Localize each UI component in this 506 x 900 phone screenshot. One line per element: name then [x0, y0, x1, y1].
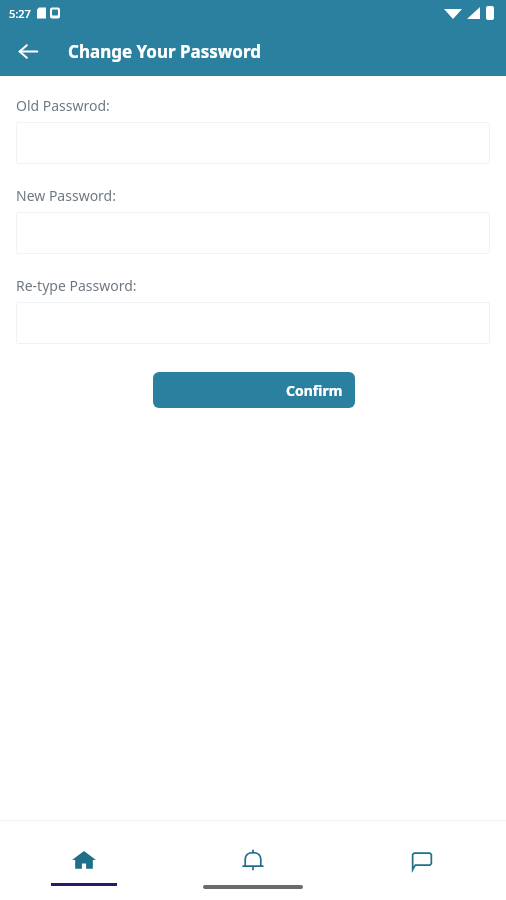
button[interactable] [16, 212, 490, 254]
staticText: Old Passwrod: [16, 96, 110, 115]
button[interactable] [16, 122, 490, 164]
button[interactable]: Back [10, 33, 46, 69]
staticText: 5:27 [9, 6, 31, 21]
button[interactable]: Notifications [168, 821, 337, 900]
button[interactable]: Messages [337, 821, 506, 900]
staticText: New Password: [16, 186, 116, 205]
button[interactable]: Confirm [153, 372, 355, 408]
staticText: Confirm [286, 381, 343, 400]
button[interactable]: Home [0, 821, 168, 900]
staticText: Re-type Password: [16, 276, 137, 295]
staticText: Change Your Password [68, 40, 261, 63]
button[interactable] [16, 302, 490, 344]
